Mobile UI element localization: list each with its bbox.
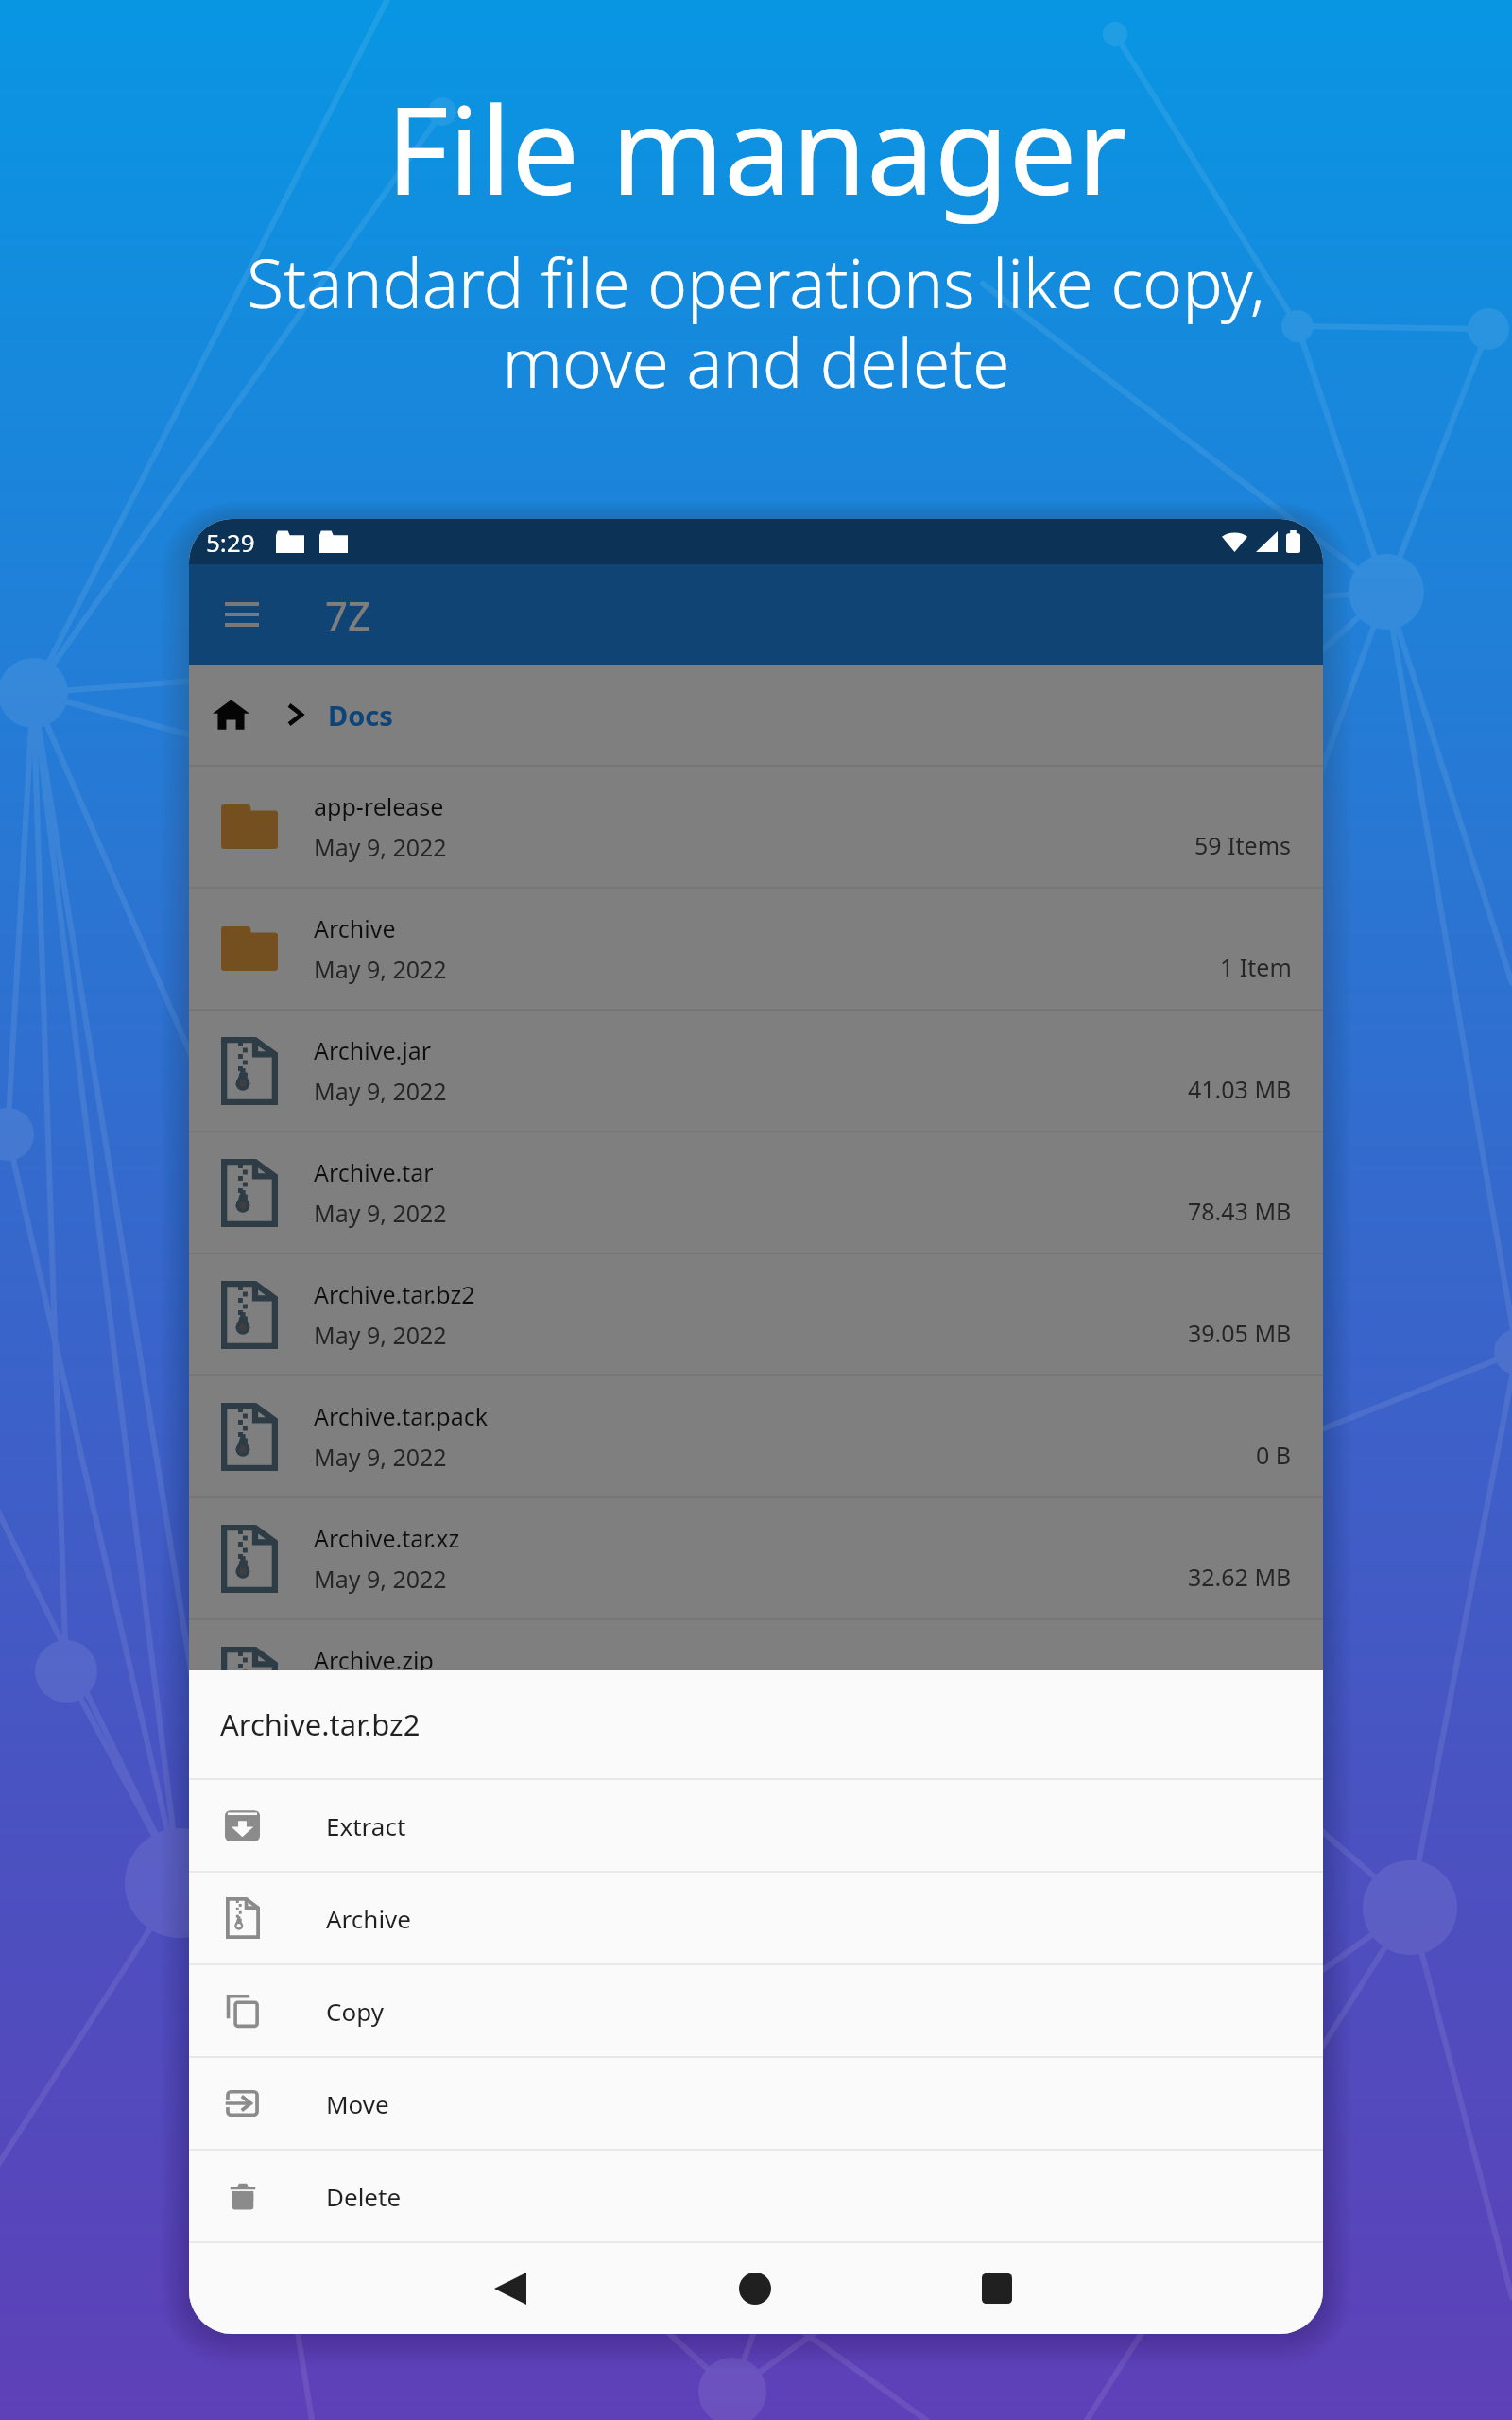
staticText: Delete bbox=[326, 2180, 402, 2213]
staticText: Copy bbox=[326, 1995, 384, 2028]
button[interactable]: Archive bbox=[189, 1873, 1323, 1963]
staticText: Archive bbox=[314, 912, 396, 944]
staticText: Archive.tar bbox=[314, 1156, 434, 1188]
staticText: May 9, 2022 bbox=[314, 1441, 447, 1473]
staticText: Archive.tar.pack bbox=[314, 1400, 489, 1432]
staticText: Archive.zip bbox=[314, 1644, 434, 1676]
staticText: 32.62 MB bbox=[1188, 1561, 1292, 1593]
staticText: 5:29 bbox=[206, 526, 255, 559]
staticText: Standard file operations like copy, move… bbox=[247, 236, 1265, 407]
staticText: May 9, 2022 bbox=[314, 831, 447, 863]
button[interactable]: Archive.tar.pack bbox=[189, 1376, 1323, 1496]
button[interactable]: Copy bbox=[189, 1965, 1323, 2056]
staticText: May 9, 2022 bbox=[314, 1563, 447, 1595]
button[interactable]: Archive.tar.bz2 bbox=[189, 1254, 1323, 1374]
staticText: Extract bbox=[326, 1809, 406, 1842]
staticText: 1 Item bbox=[1220, 951, 1292, 983]
staticText: Archive.tar.xz bbox=[314, 1522, 460, 1554]
staticText: 0 B bbox=[1256, 1439, 1292, 1471]
staticText: Archive.jar bbox=[314, 1034, 432, 1066]
staticText: May 9, 2022 bbox=[314, 1685, 447, 1717]
staticText: 78.43 MB bbox=[1188, 1195, 1292, 1227]
button[interactable]: app-release bbox=[189, 767, 1323, 887]
button[interactable]: Move bbox=[189, 2058, 1323, 2149]
staticText: 41.03 MB bbox=[1188, 1073, 1292, 1105]
button[interactable]: Archive.zip bbox=[189, 1620, 1323, 1740]
button[interactable]: Home folder bbox=[203, 680, 259, 750]
staticText: Archive bbox=[326, 1902, 411, 1935]
button[interactable]: Archive.tar.xz bbox=[189, 1498, 1323, 1618]
staticText: Archive.tar.bz2 bbox=[314, 1278, 475, 1310]
button[interactable]: Docs bbox=[328, 697, 393, 734]
staticText: May 9, 2022 bbox=[314, 1197, 447, 1229]
staticText: May 9, 2022 bbox=[314, 1319, 447, 1351]
button[interactable]: Archive bbox=[189, 889, 1323, 1009]
staticText: app-release bbox=[314, 790, 444, 822]
staticText: File manager bbox=[386, 65, 1127, 230]
staticText: May 9, 2022 bbox=[314, 1075, 447, 1107]
staticText: Move bbox=[326, 2087, 389, 2120]
staticText: Archive.tar.bz2 bbox=[220, 1704, 421, 1744]
button[interactable]: Archive.jar bbox=[189, 1011, 1323, 1131]
button[interactable]: Extract bbox=[189, 1780, 1323, 1871]
button[interactable]: Archive.tar bbox=[189, 1132, 1323, 1253]
button[interactable]: Open navigation menu bbox=[206, 579, 278, 650]
staticText: May 9, 2022 bbox=[314, 953, 447, 985]
button[interactable]: Home bbox=[710, 2243, 800, 2334]
button[interactable]: Back bbox=[465, 2243, 556, 2334]
button[interactable]: Delete bbox=[189, 2151, 1323, 2241]
staticText: 39.05 MB bbox=[1188, 1317, 1292, 1349]
staticText: 59 Items bbox=[1194, 829, 1292, 861]
staticText: 7Z bbox=[325, 588, 371, 642]
button[interactable]: Recent apps bbox=[952, 2243, 1042, 2334]
staticText: Docs bbox=[328, 697, 393, 734]
